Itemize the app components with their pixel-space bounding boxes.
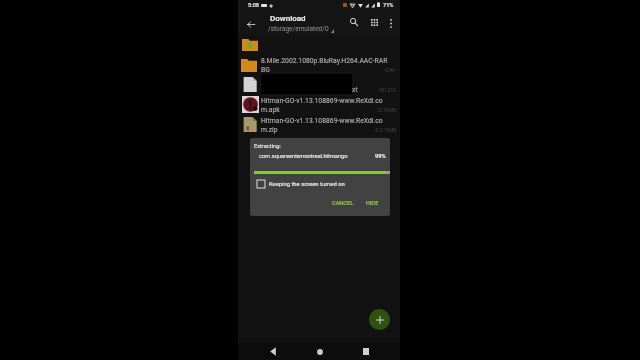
staticText: Download xyxy=(270,14,306,23)
button[interactable]: Hitman-GO-v1.13.108869-www.ReXdl.co m.ap… xyxy=(238,95,400,115)
staticText: Keeping the screen turned on xyxy=(269,181,345,188)
staticText: 99% xyxy=(375,153,386,160)
button[interactable]: Keeping the screen turned on xyxy=(257,180,345,188)
button[interactable]: Search xyxy=(346,14,362,30)
button[interactable]: Home xyxy=(312,344,328,359)
staticText: 8.Mile.2002.1080p.BluRay.H264.AAC-RAR BG xyxy=(261,57,388,73)
staticText: com.squareenixmontreal.hitmango xyxy=(259,153,348,160)
staticText: 5:08 xyxy=(248,2,260,9)
staticText: 71% xyxy=(383,2,394,9)
button[interactable]: Grid view xyxy=(367,15,383,31)
staticText: HIDE xyxy=(366,200,379,207)
staticText: 22.59MB xyxy=(377,108,396,113)
button[interactable]: 8.Mile.2002.1080p.BluRay.H264.AAC-RAR BG xyxy=(238,55,400,75)
staticText: <DIR> xyxy=(384,68,396,73)
staticText: Hitman-GO-v1.13.108869-www.ReXdl.co m.ap… xyxy=(261,97,383,113)
button[interactable]: HIDE xyxy=(362,196,383,211)
staticText: /storage/emulated/0 xyxy=(268,25,329,33)
staticText: Extracting: xyxy=(254,143,281,150)
button[interactable]: CANCEL xyxy=(328,196,358,211)
button[interactable]: Back xyxy=(265,344,281,359)
button[interactable]: journal.entries.and.priv sonal.notes.bac… xyxy=(238,75,400,95)
button[interactable]: Recent apps xyxy=(358,344,374,359)
staticText: 551.21K xyxy=(378,88,396,93)
button[interactable]: Back xyxy=(243,16,259,32)
button[interactable]: Parent folder xyxy=(238,35,400,55)
staticText: 412.19MB xyxy=(375,128,396,133)
staticText: journal.entries.and.priv sonal.notes.bac… xyxy=(261,77,358,93)
staticText: CANCEL xyxy=(332,200,354,207)
button[interactable]: Add xyxy=(369,309,390,330)
staticText: Hitman-GO-v1.13.108869-www.ReXdl.co m.zi… xyxy=(261,117,383,133)
button[interactable]: More options xyxy=(383,15,399,31)
button[interactable]: Hitman-GO-v1.13.108869-www.ReXdl.co m.zi… xyxy=(238,115,400,135)
